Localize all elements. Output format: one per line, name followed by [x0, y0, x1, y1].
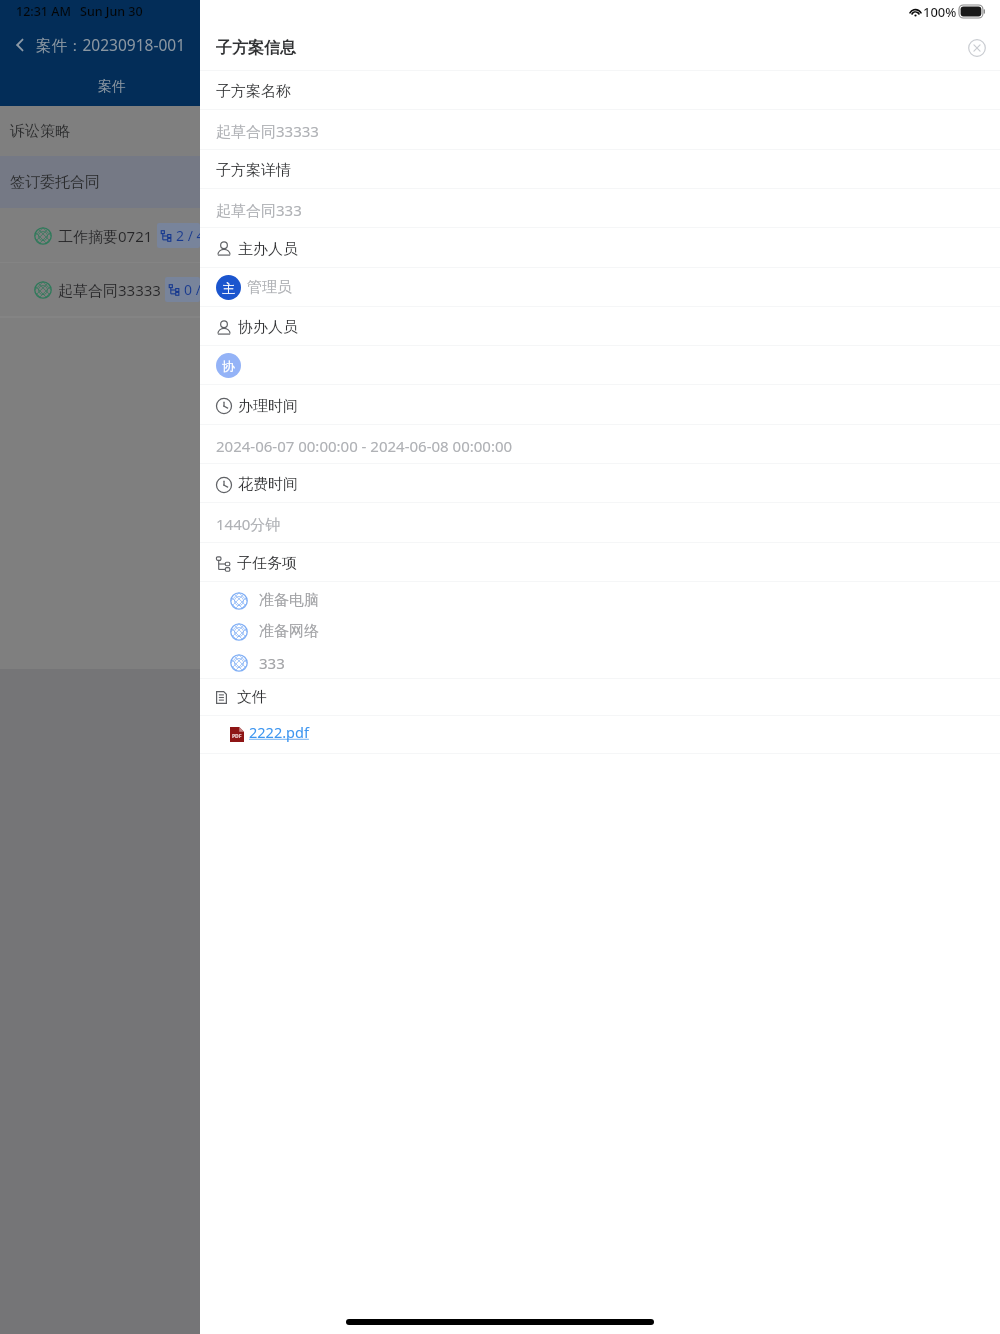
button[interactable]: 准备电脑: [200, 585, 1000, 616]
staticText: 签订委托合同: [10, 173, 100, 192]
button[interactable]: Back: [8, 33, 32, 57]
button[interactable]: 办理时间: [200, 385, 1000, 424]
button[interactable]: 诉讼策略: [0, 106, 200, 156]
staticText: 子方案名称: [216, 82, 291, 101]
staticText: 主办人员: [238, 240, 298, 259]
button[interactable]: 子方案名称: [200, 71, 1000, 109]
button[interactable]: Close: [962, 33, 992, 63]
staticText: 文件: [237, 688, 267, 707]
button[interactable]: 签订委托合同: [0, 156, 200, 208]
button[interactable]: 主办人员: [200, 228, 1000, 267]
staticText: 准备电脑: [259, 591, 319, 610]
staticText: 12:31 AM: [16, 3, 71, 20]
button[interactable]: 准备网络: [200, 616, 1000, 647]
staticText: 333: [259, 653, 285, 673]
staticText: 起草合同33333: [216, 121, 319, 141]
staticText: PDF: [232, 733, 242, 740]
button[interactable]: 协办人员: [200, 307, 1000, 345]
button[interactable]: 子任务项: [200, 543, 1000, 581]
staticText: 案件：20230918-001: [36, 34, 186, 55]
staticText: 子方案详情: [216, 161, 291, 180]
staticText: 管理员: [247, 278, 292, 297]
button[interactable]: 主: [200, 268, 1000, 306]
staticText: 2024-06-07 00:00:00 - 2024-06-08 00:00:0…: [216, 436, 513, 456]
button[interactable]: 文件: [200, 679, 1000, 715]
button[interactable]: PDF: [200, 716, 1000, 753]
button[interactable]: 起草合同333: [200, 189, 1000, 227]
button[interactable]: 子方案详情: [200, 150, 1000, 188]
button[interactable]: 333: [200, 647, 1000, 678]
button[interactable]: 花费时间: [200, 464, 1000, 502]
button[interactable]: 工作摘要0721: [0, 208, 200, 262]
button[interactable]: 起草合同33333: [0, 263, 200, 316]
staticText: 案件: [98, 78, 126, 96]
staticText: 子方案信息: [216, 38, 296, 58]
staticText: 办理时间: [238, 397, 298, 416]
staticText: 起草合同333: [216, 200, 302, 220]
staticText: 子任务项: [237, 554, 297, 573]
staticText: 诉讼策略: [10, 122, 70, 141]
staticText: 工作摘要0721: [58, 226, 153, 246]
staticText: Sun Jun 30: [80, 3, 143, 20]
staticText: 100%: [923, 3, 957, 21]
staticText: 起草合同33333: [58, 280, 161, 300]
button[interactable]: 1440分钟: [200, 503, 1000, 542]
staticText: 主: [222, 280, 235, 296]
button[interactable]: 起草合同33333: [200, 110, 1000, 149]
staticText: 1440分钟: [216, 514, 281, 534]
staticText: 2 / 4: [176, 226, 200, 245]
staticText: 协办人员: [238, 318, 298, 337]
staticText: 花费时间: [238, 475, 298, 494]
staticText: 2222.pdf: [249, 722, 309, 742]
staticText: 0 / 0: [184, 280, 200, 299]
button[interactable]: 2024-06-07 00:00:00 - 2024-06-08 00:00:0…: [200, 425, 1000, 463]
staticText: 协: [222, 358, 235, 374]
staticText: 准备网络: [259, 622, 319, 641]
button[interactable]: 协: [200, 346, 1000, 384]
